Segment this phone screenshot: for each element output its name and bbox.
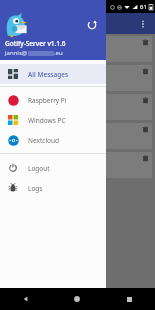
staticText: Gotify-Server v1.1.6 [5,39,66,48]
button[interactable]: Raspberry Pi [0,90,106,110]
button[interactable]: Logs [0,178,106,198]
button[interactable]: Vor 4 Stunden [3,123,152,149]
button[interactable]: More options [135,16,151,32]
button[interactable]: Back [0,288,51,310]
button[interactable]: Delete [141,67,149,75]
staticText: Logs [28,184,43,193]
button[interactable]: Vor 3 Stunden [3,36,152,62]
button[interactable]: Delete [141,154,149,162]
staticText: Raspberry Pi [28,96,67,105]
button[interactable]: Delete [141,38,149,46]
staticText: Vor 3 Stunden [6,96,46,104]
staticText: jannis@ [5,49,28,57]
staticText: ERR [6,139,17,147]
button[interactable]: Delete [141,96,149,104]
staticText: 192.168.0.1 [6,52,39,60]
button[interactable]: All Messages [0,64,106,84]
staticText: Vor 3 Stunden [6,67,46,75]
button[interactable]: Vor 3 Stunden [3,65,152,91]
staticText: Logout [28,164,50,173]
button[interactable]: Refresh [84,17,100,33]
staticText: 192.168.0.8 [6,110,39,118]
button[interactable]: Logout [0,158,106,178]
staticText: Vor 3 Stunden [6,38,46,46]
button[interactable]: Recents [103,288,155,310]
staticText: All Messages [28,70,69,79]
staticText: 61 [140,3,147,11]
button[interactable]: Home [51,288,103,310]
button[interactable]: Vor 3 Stunden [3,94,152,120]
button[interactable]: Windows PC [0,110,106,130]
button[interactable]: Vor 4 Stunden [3,152,152,178]
button[interactable]: Nextcloud [0,130,106,150]
staticText: 192.168.0.5 [6,81,39,89]
button[interactable]: Delete [141,125,149,133]
staticText: .eu [54,49,63,57]
staticText: Windows PC [28,116,66,125]
staticText: 192.168.0.2 [6,168,39,176]
staticText: Nextcloud [28,136,60,145]
